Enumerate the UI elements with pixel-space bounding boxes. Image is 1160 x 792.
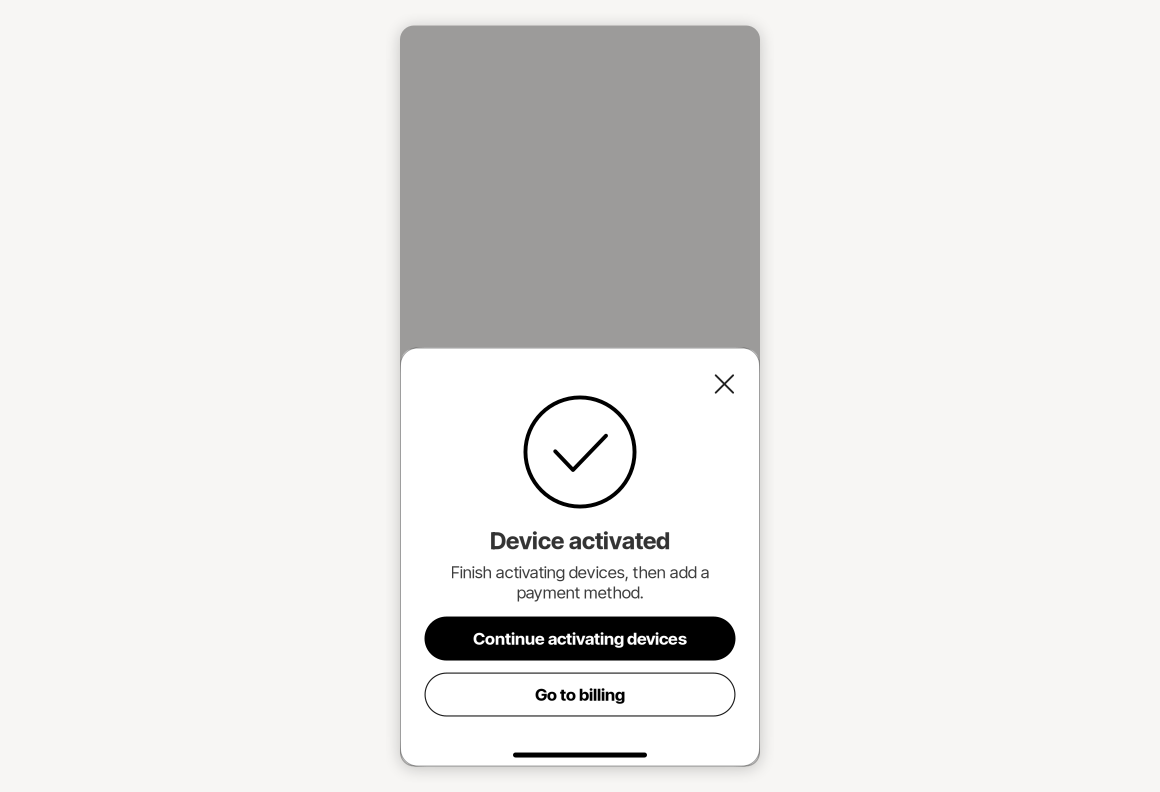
button[interactable]: Go to billing [424, 672, 735, 716]
button[interactable]: Continue activating devices [424, 616, 735, 660]
staticText: Finish activating devices, then add a pa… [450, 562, 709, 603]
staticText: Device activated [490, 526, 670, 555]
button[interactable]: Close [706, 366, 742, 402]
staticText: Continue activating devices [473, 628, 687, 649]
staticText: Go to billing [535, 684, 625, 705]
